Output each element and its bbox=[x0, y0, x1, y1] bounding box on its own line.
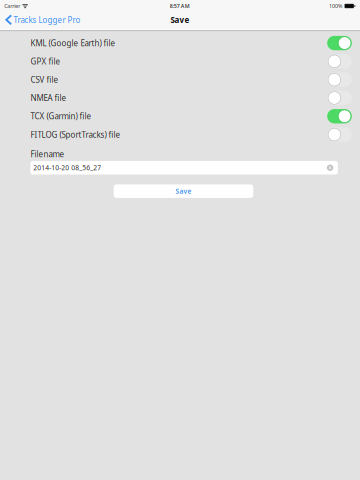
staticText: 100% bbox=[329, 2, 342, 10]
staticText: TCX (Garmin) file bbox=[30, 111, 91, 121]
staticText: Save bbox=[170, 14, 189, 25]
button[interactable]: GPX file, off bbox=[327, 54, 352, 69]
staticText: 2014-10-20 08_56_27 bbox=[33, 163, 101, 172]
staticText: Save bbox=[175, 187, 191, 196]
button[interactable]: Tracks Logger Pro bbox=[0, 11, 86, 29]
staticText: Carrier bbox=[4, 2, 20, 10]
staticText: KML (Google Earth) file bbox=[30, 38, 115, 48]
button[interactable]: Clear text bbox=[327, 164, 333, 171]
button[interactable]: NMEA file, off bbox=[327, 91, 352, 105]
button[interactable]: Save bbox=[114, 184, 253, 198]
button[interactable]: Filename: 2014-10-20 08_56_27 bbox=[30, 161, 338, 174]
button[interactable]: KML (Google Earth) file, on bbox=[327, 36, 352, 50]
staticText: Tracks Logger Pro bbox=[14, 14, 81, 25]
staticText: 8:57 AM bbox=[170, 2, 190, 10]
staticText: Filename bbox=[30, 149, 64, 159]
button[interactable]: CSV file, off bbox=[327, 72, 352, 87]
staticText: NMEA file bbox=[30, 93, 66, 103]
staticText: GPX file bbox=[30, 56, 60, 67]
staticText: CSV file bbox=[30, 74, 58, 85]
staticText: FITLOG (SportTracks) file bbox=[30, 129, 120, 140]
button[interactable]: FITLOG (SportTracks) file, off bbox=[327, 127, 352, 142]
button[interactable]: TCX (Garmin) file, on bbox=[327, 109, 352, 123]
